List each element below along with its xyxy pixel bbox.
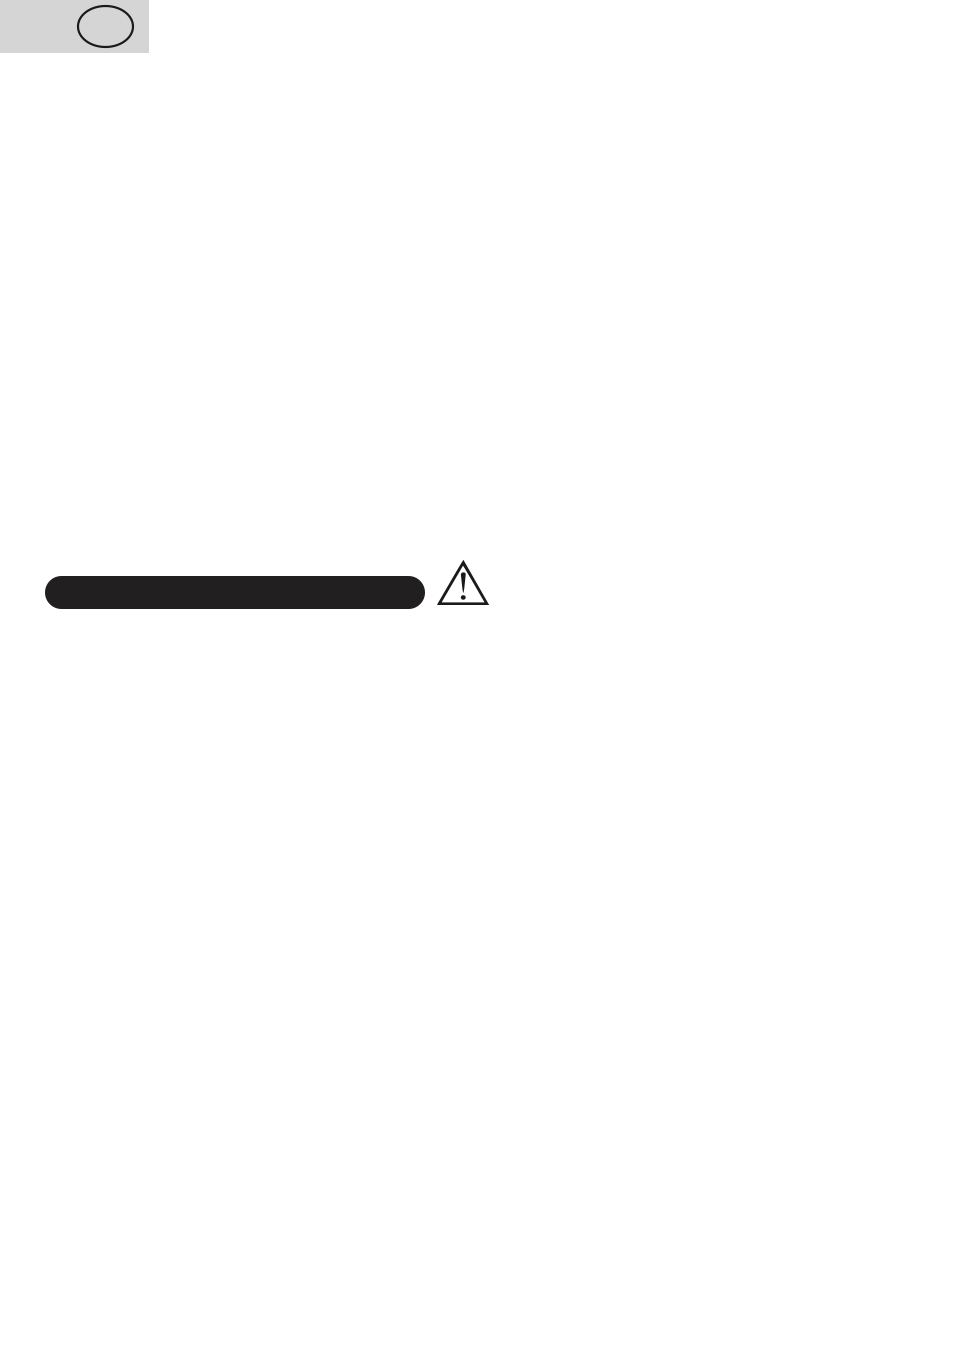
button[interactable]: Continue <box>45 576 425 609</box>
button[interactable]: Account <box>0 0 149 53</box>
button[interactable]: Warning <box>437 560 489 605</box>
